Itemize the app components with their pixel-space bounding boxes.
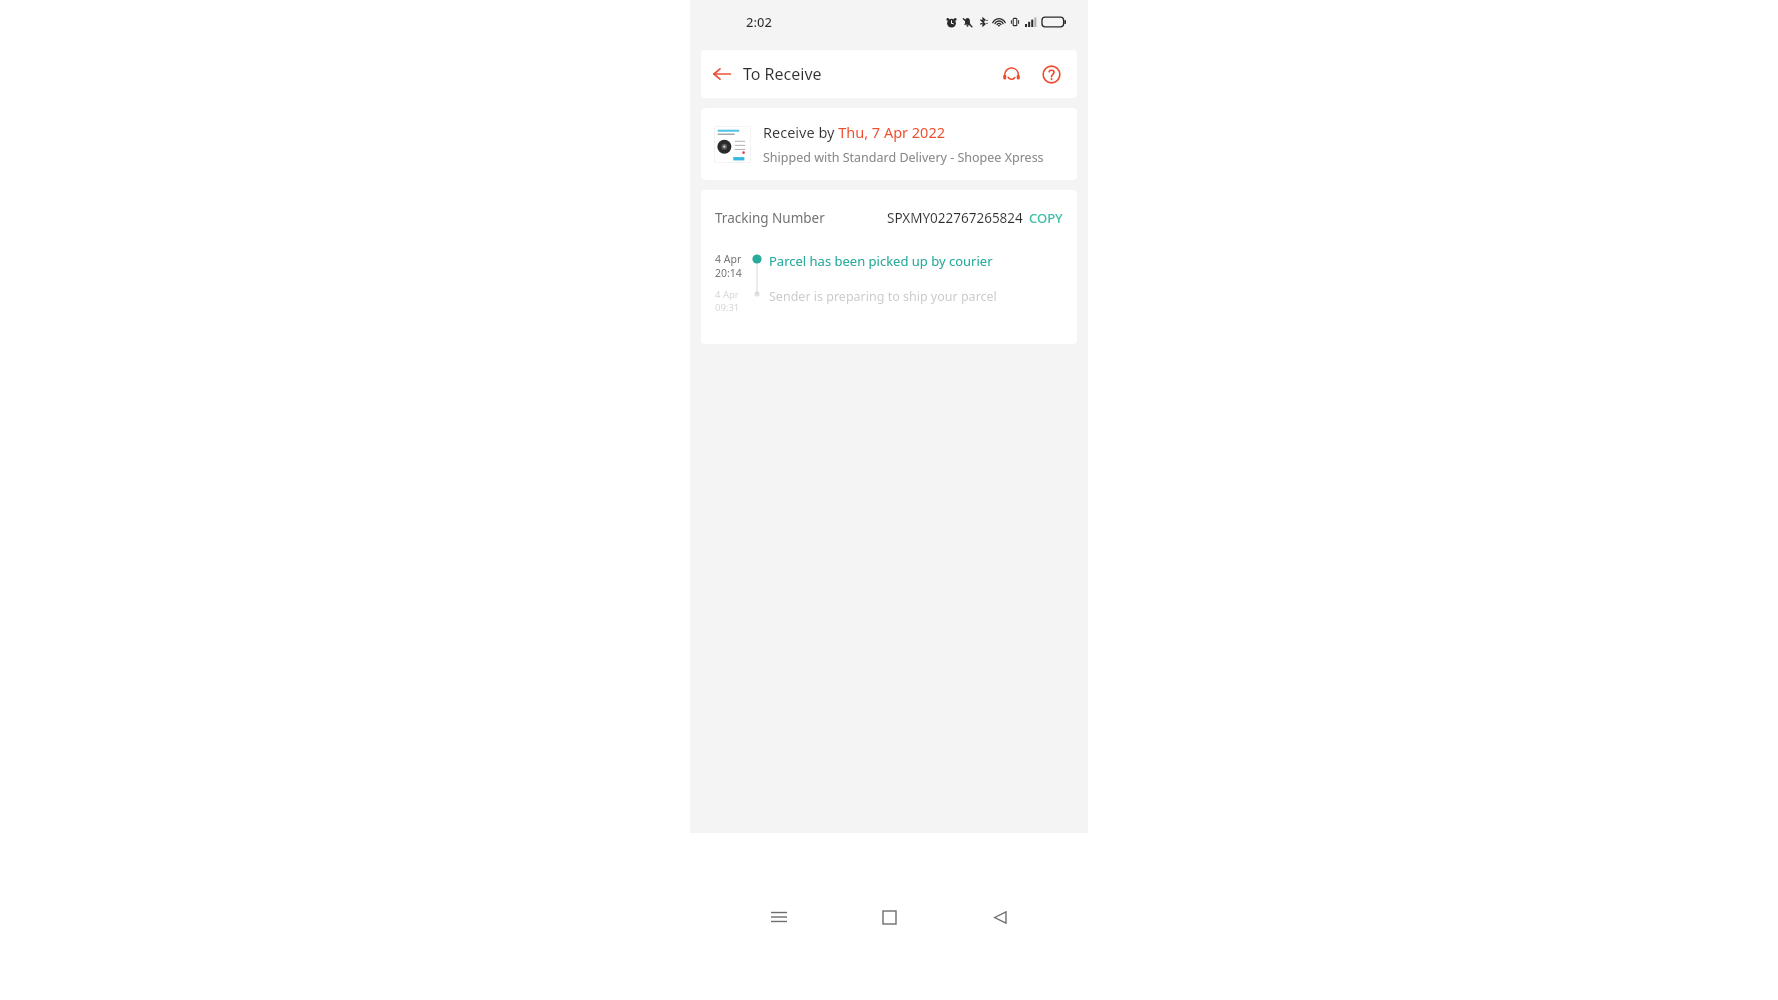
button[interactable]: Back bbox=[978, 895, 1022, 939]
staticText: Sender is preparing to ship your parcel bbox=[769, 288, 997, 305]
button[interactable]: COPY bbox=[1023, 207, 1065, 229]
staticText: 4 Apr bbox=[715, 288, 739, 301]
button[interactable]: Recent apps bbox=[757, 895, 801, 939]
button[interactable]: Receive by Thu, 7 Apr 2022 bbox=[701, 108, 1077, 180]
staticText: COPY bbox=[1029, 209, 1063, 227]
button[interactable]: Customer support bbox=[991, 54, 1031, 94]
staticText: Shipped with Standard Delivery - Shopee … bbox=[763, 149, 1044, 166]
staticText: Tracking Number bbox=[715, 209, 825, 227]
staticText: 09:31 bbox=[715, 301, 740, 314]
staticText: SPXMY022767265824 bbox=[887, 209, 1023, 227]
staticText: 4 Apr bbox=[715, 252, 742, 266]
button[interactable]: Back bbox=[701, 53, 743, 95]
staticText: Receive by Thu, 7 Apr 2022 bbox=[763, 122, 946, 142]
staticText: 20:14 bbox=[715, 266, 742, 280]
staticText: 2:02 bbox=[746, 13, 772, 31]
button[interactable]: Help bbox=[1031, 54, 1071, 94]
staticText: Parcel has been picked up by courier bbox=[769, 252, 993, 270]
button[interactable]: Home bbox=[867, 895, 911, 939]
staticText: To Receive bbox=[743, 63, 822, 85]
